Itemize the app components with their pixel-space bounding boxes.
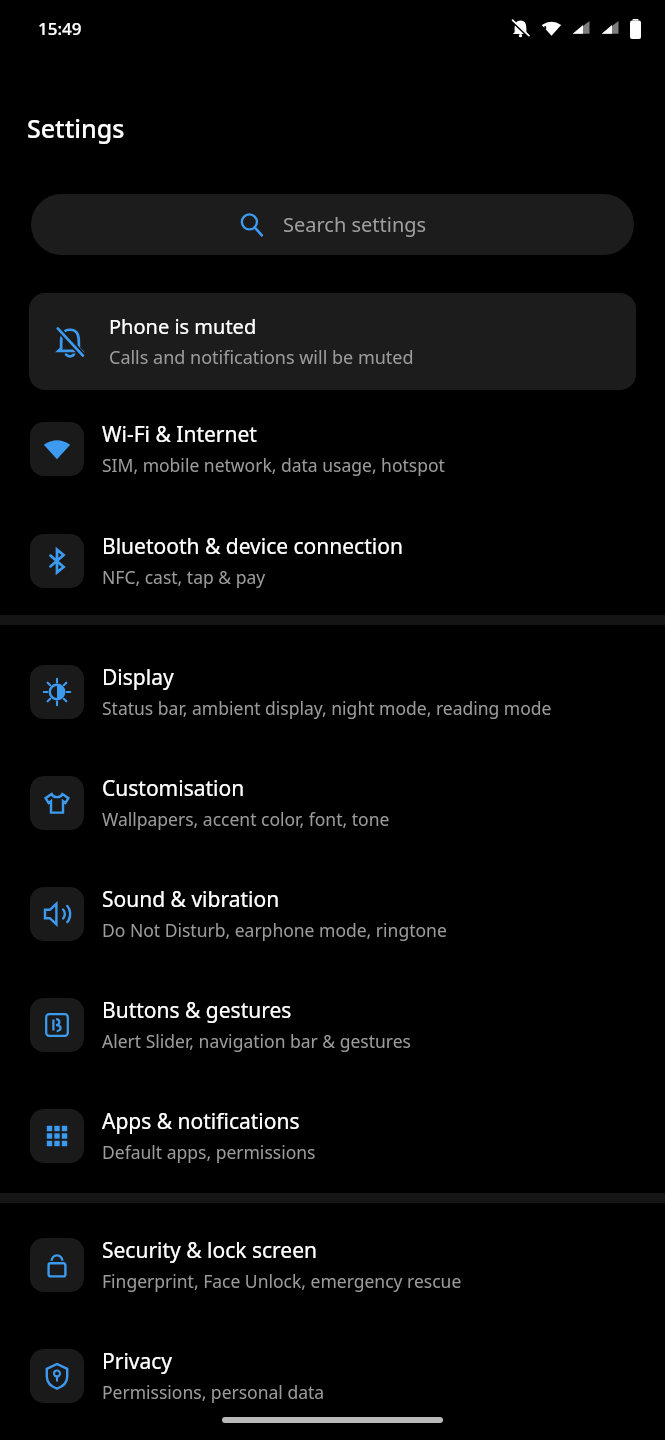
staticText: Display xyxy=(102,663,174,692)
staticText: Calls and notifications will be muted xyxy=(109,345,414,370)
staticText: SIM, mobile network, data usage, hotspot xyxy=(102,453,445,477)
button[interactable]: Search settings xyxy=(31,194,634,255)
staticText: Sound & vibration xyxy=(102,885,280,914)
staticText: Alert Slider, navigation bar & gestures xyxy=(102,1029,411,1053)
button[interactable]: Customisation xyxy=(0,774,665,831)
button[interactable]: Wi-Fi & Internet xyxy=(0,420,665,477)
button[interactable]: Sound & vibration xyxy=(0,885,665,942)
staticText: Do Not Disturb, earphone mode, ringtone xyxy=(102,918,447,942)
staticText: Permissions, personal data xyxy=(102,1380,325,1404)
staticText: Buttons & gestures xyxy=(102,996,292,1025)
staticText: Customisation xyxy=(102,774,245,803)
button[interactable]: Security & lock screen xyxy=(0,1236,665,1293)
staticText: Settings xyxy=(27,111,125,145)
staticText: Security & lock screen xyxy=(102,1236,318,1265)
button[interactable]: Privacy xyxy=(0,1347,665,1404)
staticText: Wallpapers, accent color, font, tone xyxy=(102,807,390,831)
staticText: Search settings xyxy=(283,211,427,238)
staticText: Status bar, ambient display, night mode,… xyxy=(102,696,552,720)
button[interactable]: Bluetooth & device connection xyxy=(0,532,665,589)
staticText: 15:49 xyxy=(38,17,82,40)
button[interactable]: Display xyxy=(0,663,665,720)
staticText: Default apps, permissions xyxy=(102,1140,316,1164)
button[interactable]: Buttons & gestures xyxy=(0,996,665,1053)
button[interactable]: Phone is muted xyxy=(29,293,636,390)
staticText: NFC, cast, tap & pay xyxy=(102,565,266,589)
staticText: Wi-Fi & Internet xyxy=(102,420,257,449)
staticText: Apps & notifications xyxy=(102,1107,300,1136)
staticText: Privacy xyxy=(102,1347,173,1376)
button[interactable]: Apps & notifications xyxy=(0,1107,665,1164)
staticText: Bluetooth & device connection xyxy=(102,532,403,561)
staticText: Phone is muted xyxy=(109,313,257,340)
staticText: Fingerprint, Face Unlock, emergency resc… xyxy=(102,1269,462,1293)
